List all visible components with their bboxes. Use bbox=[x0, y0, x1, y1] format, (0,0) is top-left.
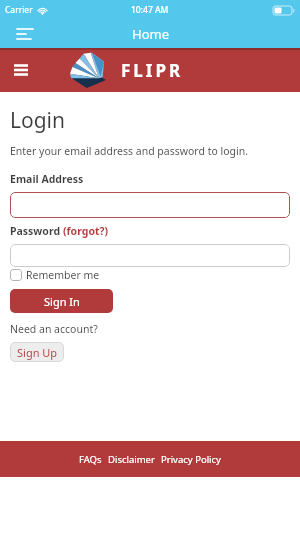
staticText: Remember me bbox=[26, 268, 100, 282]
button[interactable]: FAQs bbox=[79, 453, 102, 466]
staticText: Password bbox=[10, 224, 63, 238]
staticText: FLIPR bbox=[121, 59, 184, 82]
button[interactable]: (forgot?) bbox=[63, 224, 109, 238]
button[interactable] bbox=[14, 64, 29, 76]
staticText: Email Address bbox=[10, 172, 84, 186]
staticText: Login bbox=[10, 106, 66, 135]
button[interactable] bbox=[10, 244, 290, 267]
staticText: Need an account? bbox=[10, 322, 98, 336]
staticText: Enter your email address and password to… bbox=[10, 144, 249, 158]
button[interactable]: Sign Up bbox=[10, 342, 64, 362]
button[interactable]: Privacy Policy bbox=[161, 453, 221, 466]
button[interactable]: Remember me bbox=[10, 268, 100, 282]
staticText: 10:47 AM bbox=[131, 4, 169, 16]
button[interactable]: Disclaimer bbox=[108, 453, 155, 466]
staticText: Sign In bbox=[44, 294, 80, 309]
staticText: Home bbox=[132, 25, 169, 43]
button[interactable] bbox=[10, 192, 290, 218]
button[interactable] bbox=[14, 26, 34, 42]
staticText: Sign Up bbox=[17, 345, 58, 360]
staticText: Carrier bbox=[5, 4, 33, 16]
button[interactable]: Sign In bbox=[10, 289, 113, 313]
